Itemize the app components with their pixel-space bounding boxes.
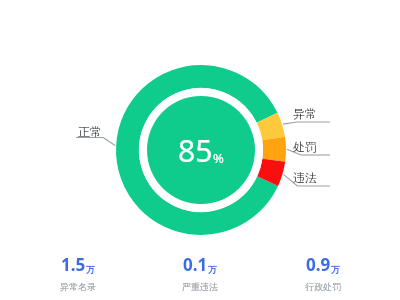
staticText: 万 xyxy=(208,264,217,275)
staticText: 违法 xyxy=(293,170,317,185)
staticText: 正常 xyxy=(78,124,102,139)
button[interactable]: 0.1 xyxy=(155,251,245,294)
button[interactable]: 1.5 xyxy=(33,251,123,294)
button[interactable]: 正常 xyxy=(78,124,102,139)
staticText: 异常名录 xyxy=(60,281,96,292)
staticText: 严重违法 xyxy=(182,281,218,292)
staticText: 异常 xyxy=(293,106,317,121)
staticText: 处罚 xyxy=(293,139,317,154)
button[interactable]: 85 xyxy=(0,0,400,255)
staticText: 行政处罚 xyxy=(305,281,341,292)
button[interactable]: 异常 xyxy=(293,106,317,121)
button[interactable]: 处罚 xyxy=(293,139,317,154)
staticText: 0.9 xyxy=(306,253,331,276)
staticText: 1.5 xyxy=(61,253,86,276)
staticText: 85 xyxy=(178,130,213,170)
staticText: 0.1 xyxy=(183,253,208,276)
staticText: 万 xyxy=(331,264,340,275)
staticText: % xyxy=(213,149,224,167)
button[interactable]: 0.9 xyxy=(278,251,368,294)
button[interactable]: 违法 xyxy=(293,170,317,185)
staticText: 万 xyxy=(86,264,95,275)
